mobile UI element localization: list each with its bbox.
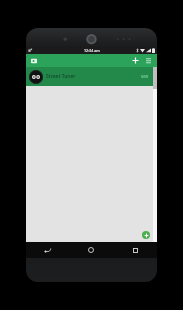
- staticText: Street Tuner: [46, 73, 141, 80]
- button[interactable]: Home: [69, 242, 113, 258]
- button[interactable]: Add: [142, 231, 150, 239]
- staticText: NEW: [141, 75, 149, 79]
- staticText: 12:34 am: [84, 48, 100, 53]
- button[interactable]: Open navigation drawer: [29, 56, 38, 65]
- button[interactable]: Add: [129, 54, 142, 67]
- button[interactable]: Recent apps: [113, 242, 157, 258]
- button[interactable]: Back: [26, 242, 69, 258]
- button[interactable]: Street Tuner: [26, 67, 157, 86]
- button[interactable]: More options: [142, 54, 155, 67]
